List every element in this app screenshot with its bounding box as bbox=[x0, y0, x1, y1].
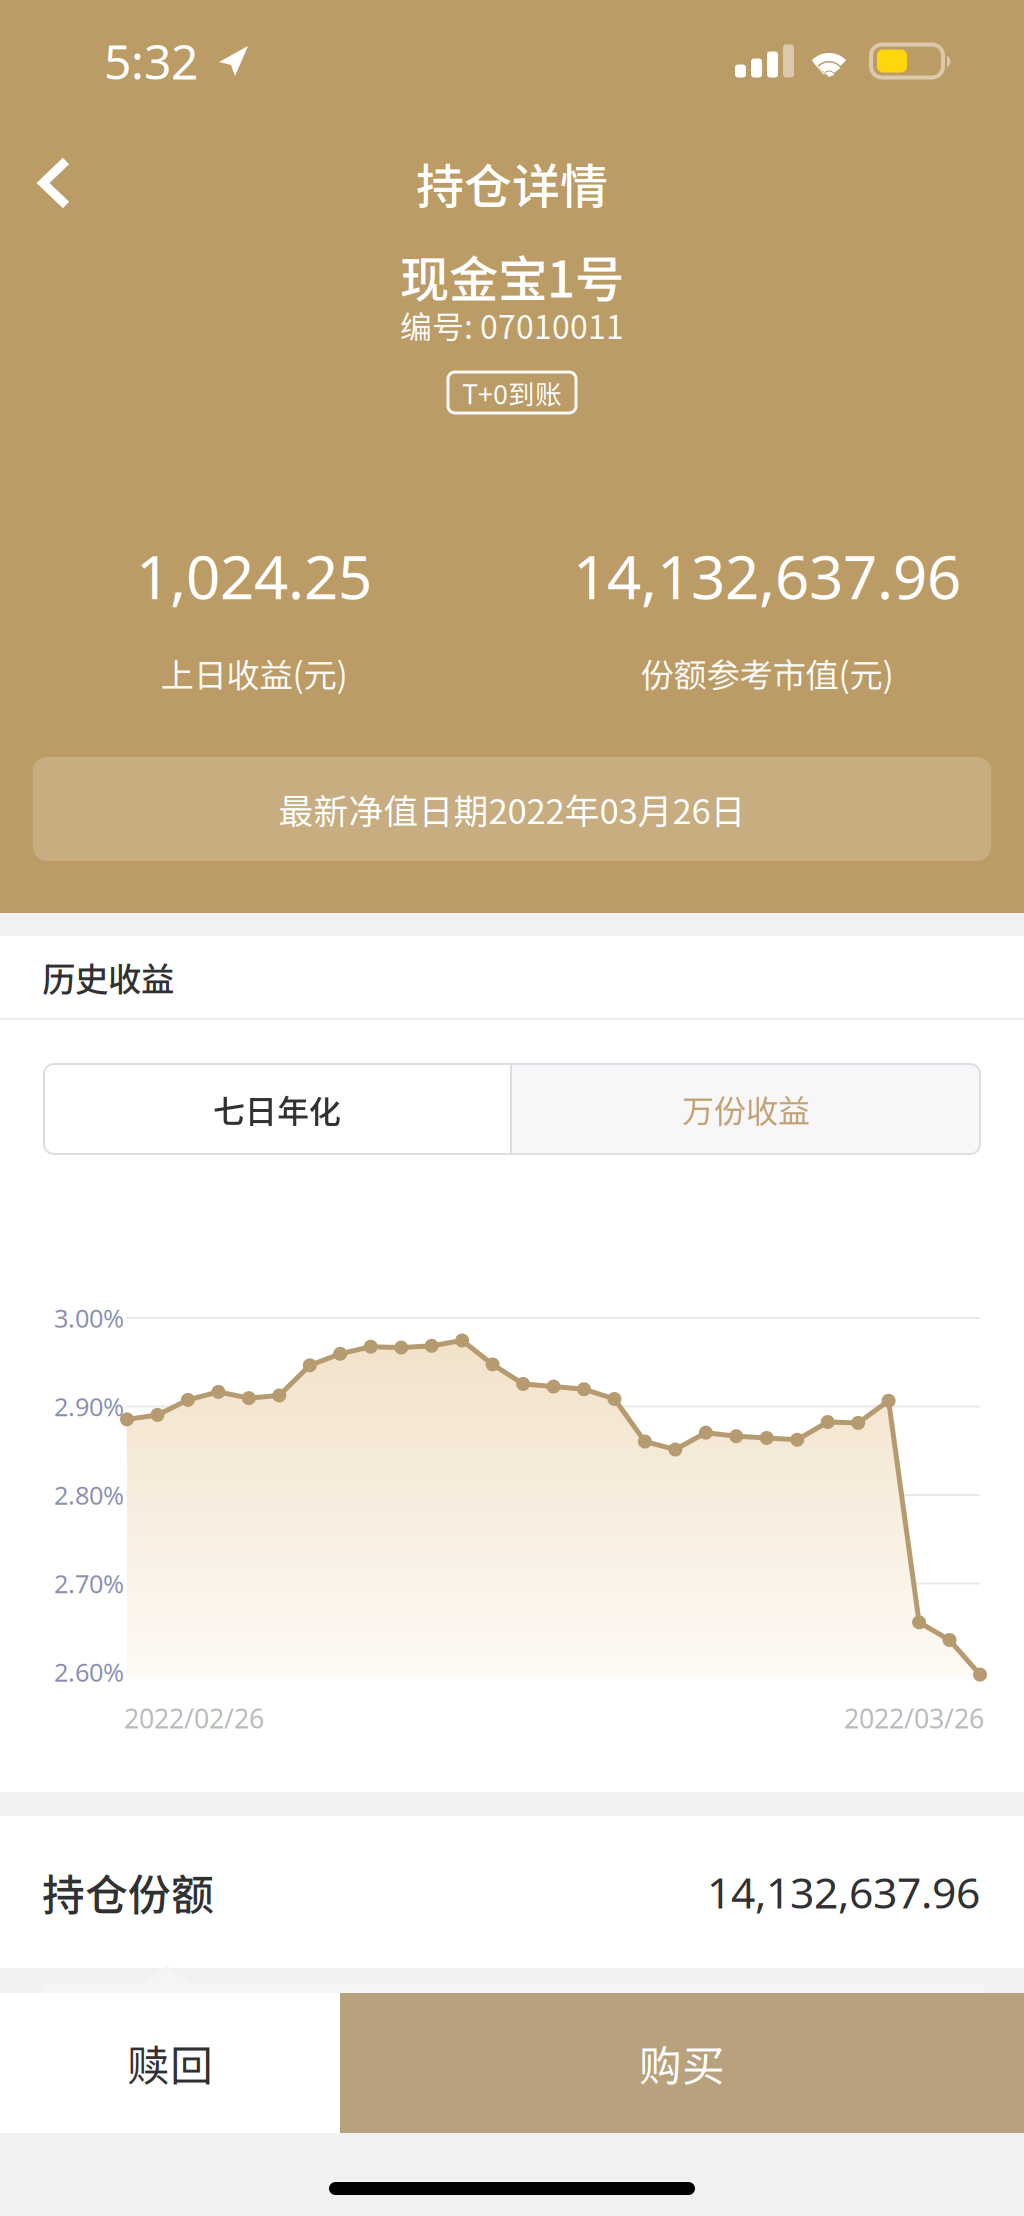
button[interactable]: 赎回 bbox=[0, 1993, 340, 2133]
staticText: 1,024.25 bbox=[136, 535, 372, 617]
staticText: 持仓详情 bbox=[416, 148, 608, 218]
staticText: T+0到账 bbox=[462, 373, 562, 412]
button[interactable]: 返回 bbox=[0, 158, 104, 208]
staticText: 购买 bbox=[639, 2032, 725, 2094]
staticText: 编号: 07010011 bbox=[400, 302, 624, 348]
staticText: 持仓份额 bbox=[42, 1861, 214, 1923]
staticText: 5:32 bbox=[104, 28, 198, 94]
staticText: 2022/03/26 bbox=[844, 1700, 984, 1736]
staticText: 上日收益(元) bbox=[160, 649, 347, 697]
button[interactable]: 购买 bbox=[340, 1993, 1024, 2133]
staticText: 赎回 bbox=[127, 2032, 213, 2094]
staticText: 2.70% bbox=[54, 1566, 124, 1601]
staticText: 历史收益 bbox=[42, 953, 174, 1001]
staticText: 3.00% bbox=[54, 1301, 124, 1335]
staticText: 2.60% bbox=[54, 1655, 124, 1689]
button[interactable]: 万份收益 bbox=[512, 1064, 980, 1154]
staticText: 现金宝1号 bbox=[400, 240, 624, 312]
staticText: 份额参考市值(元) bbox=[640, 649, 893, 697]
staticText: 2022/02/26 bbox=[124, 1700, 264, 1736]
staticText: 万份收益 bbox=[682, 1086, 810, 1132]
staticText: 七日年化 bbox=[213, 1086, 341, 1132]
staticText: 14,132,637.96 bbox=[573, 535, 961, 617]
staticText: 最新净值日期2022年03月26日 bbox=[278, 784, 745, 834]
staticText: 2.80% bbox=[54, 1478, 124, 1512]
staticText: 2.90% bbox=[54, 1389, 124, 1424]
button[interactable]: 七日年化 bbox=[44, 1064, 510, 1154]
staticText: 14,132,637.96 bbox=[707, 1863, 980, 1921]
